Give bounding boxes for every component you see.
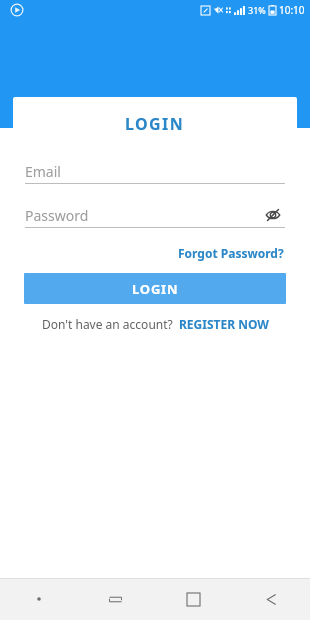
button[interactable]: Forgot Password? xyxy=(177,242,285,264)
button[interactable]: Back xyxy=(232,578,310,620)
staticText: 10:10 xyxy=(279,3,305,17)
staticText: LOGIN xyxy=(132,280,179,298)
staticText: LOGIN xyxy=(125,113,185,135)
button[interactable]: Recent apps xyxy=(77,578,154,620)
staticText: Don't have an account? xyxy=(42,316,173,332)
staticText: Email xyxy=(25,162,61,181)
staticText: Forgot Password? xyxy=(178,245,284,261)
button[interactable]: Show password xyxy=(261,203,285,227)
staticText: 31% xyxy=(248,4,266,16)
staticText: Password xyxy=(25,206,89,225)
button[interactable]: Menu xyxy=(0,578,77,620)
button[interactable]: Password xyxy=(25,203,285,227)
button[interactable]: Email xyxy=(25,159,285,183)
staticText: REGISTER NOW xyxy=(179,316,269,332)
button[interactable]: Home xyxy=(154,578,232,620)
button[interactable]: REGISTER NOW xyxy=(179,314,269,334)
button[interactable]: LOGIN xyxy=(24,273,286,304)
